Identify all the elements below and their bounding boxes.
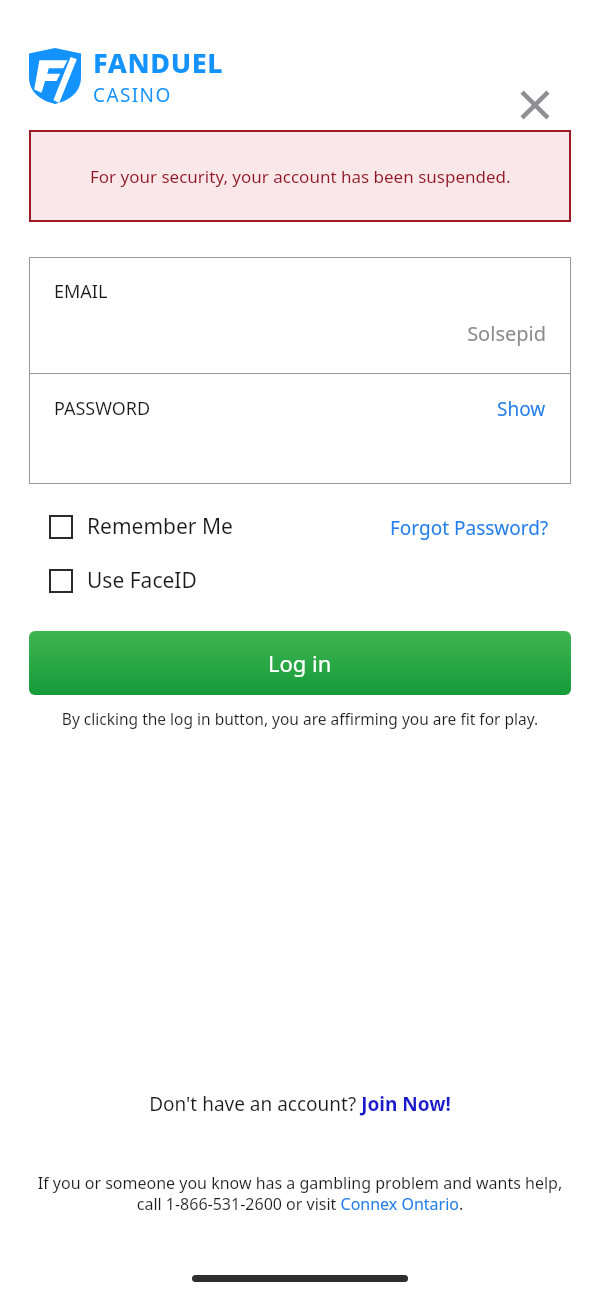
button[interactable]: Use FaceID (29, 566, 203, 595)
staticText: Use FaceID (87, 566, 197, 595)
button[interactable]: If you or someone you know has a gamblin… (36, 1172, 564, 1215)
button[interactable]: EMAIL (29, 257, 571, 373)
button[interactable]: Remember Me (29, 512, 239, 541)
button[interactable]: Close (518, 88, 552, 122)
staticText: Remember Me (87, 512, 233, 541)
staticText: FANDUEL (93, 44, 224, 81)
staticText: EMAIL (54, 279, 108, 304)
staticText: Don't have an account? Join Now! (149, 1091, 451, 1117)
staticText: PASSWORD (54, 396, 151, 421)
staticText: By clicking the log in button, you are a… (55, 708, 545, 729)
staticText: If you or someone you know has a gamblin… (36, 1172, 564, 1215)
button[interactable]: Don't have an account? Join Now! (0, 1091, 600, 1117)
staticText: Forgot Password? (390, 515, 549, 541)
staticText: Show (497, 396, 546, 422)
button[interactable]: Show (497, 396, 546, 422)
button[interactable]: Forgot Password? (390, 515, 549, 541)
staticText: For your security, your account has been… (90, 165, 511, 188)
staticText: CASINO (93, 82, 172, 108)
button[interactable]: Log in (29, 631, 571, 695)
staticText: Log in (268, 648, 332, 678)
staticText: Solsepid (54, 320, 546, 347)
